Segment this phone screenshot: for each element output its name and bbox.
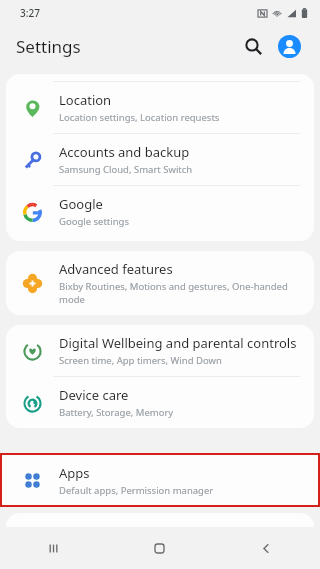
button[interactable]: Recents <box>0 527 106 569</box>
staticText: Samsung Cloud, Smart Switch <box>59 163 193 176</box>
button[interactable]: Search <box>236 29 270 63</box>
staticText: Google <box>59 195 103 213</box>
staticText: Settings <box>16 35 81 58</box>
button[interactable]: Advanced features <box>6 251 314 315</box>
staticText: Google settings <box>59 215 130 228</box>
staticText: Apps <box>59 464 90 482</box>
button[interactable]: Location <box>6 82 314 133</box>
button[interactable]: Apps <box>2 455 318 505</box>
staticText: 3:27 <box>20 6 40 20</box>
staticText: Device care <box>59 386 129 404</box>
staticText: Location <box>59 91 112 109</box>
button[interactable]: Back <box>213 527 320 569</box>
staticText: Advanced features <box>59 260 173 278</box>
button[interactable]: Digital Wellbeing and parental controls <box>6 325 314 376</box>
button[interactable]: Account <box>272 29 306 63</box>
staticText: Default apps, Permission manager <box>59 484 214 497</box>
staticText: Battery, Storage, Memory <box>59 406 174 419</box>
staticText: Bixby Routines, Motions and gestures, On… <box>59 280 300 306</box>
staticText: Digital Wellbeing and parental controls <box>59 334 297 352</box>
button[interactable]: Device care <box>6 377 314 428</box>
button[interactable]: Home <box>106 527 213 569</box>
button[interactable]: Accounts and backup <box>6 134 314 185</box>
staticText: Screen time, App timers, Wind Down <box>59 354 222 367</box>
button[interactable]: Google <box>6 186 314 237</box>
staticText: Accounts and backup <box>59 143 190 161</box>
staticText: Location settings, Location requests <box>59 111 220 124</box>
